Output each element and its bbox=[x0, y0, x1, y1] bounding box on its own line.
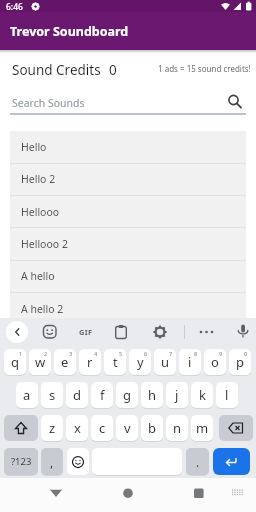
staticText: 0 bbox=[244, 350, 248, 357]
button[interactable]: v bbox=[116, 415, 138, 441]
button[interactable] bbox=[67, 448, 89, 475]
staticText: A hello 2 bbox=[21, 302, 64, 316]
button[interactable]: ?123 bbox=[4, 448, 38, 475]
staticText: d bbox=[73, 386, 81, 404]
button[interactable]: . bbox=[186, 448, 209, 475]
staticText: , bbox=[50, 454, 54, 470]
button[interactable]: , bbox=[41, 448, 63, 475]
button[interactable]: z bbox=[41, 415, 63, 441]
button[interactable]: u bbox=[154, 349, 176, 375]
button[interactable]: g bbox=[116, 382, 138, 408]
staticText: f bbox=[100, 386, 105, 404]
button[interactable]: h bbox=[141, 382, 163, 408]
staticText: 0 bbox=[109, 61, 117, 79]
button[interactable]: k bbox=[191, 382, 213, 408]
button[interactable] bbox=[219, 415, 253, 441]
button[interactable]: l bbox=[216, 382, 238, 408]
button[interactable] bbox=[115, 325, 127, 339]
button[interactable]: n bbox=[166, 415, 188, 441]
staticText: w bbox=[35, 353, 46, 371]
staticText: 6 bbox=[144, 350, 148, 357]
staticText: GIF bbox=[79, 327, 93, 337]
button[interactable] bbox=[153, 325, 167, 339]
button[interactable]: A hello bbox=[10, 260, 246, 292]
button[interactable]: m bbox=[191, 415, 213, 441]
staticText: h bbox=[148, 386, 157, 404]
button[interactable] bbox=[45, 483, 67, 503]
button[interactable]: a bbox=[16, 382, 38, 408]
button[interactable]: Hello 2 bbox=[10, 163, 246, 195]
staticText: a bbox=[23, 386, 31, 404]
button[interactable] bbox=[188, 483, 210, 503]
staticText: A hello bbox=[21, 269, 55, 283]
button[interactable]: j bbox=[166, 382, 188, 408]
button[interactable]: r bbox=[79, 349, 101, 375]
button[interactable]: Hellooo 2 bbox=[10, 228, 246, 260]
staticText: Search Sounds bbox=[12, 96, 85, 110]
staticText: 3 bbox=[69, 350, 73, 357]
staticText: k bbox=[199, 386, 206, 404]
button[interactable] bbox=[6, 321, 28, 343]
button[interactable]: o bbox=[204, 349, 226, 375]
staticText: ?123 bbox=[11, 455, 32, 468]
staticText: m bbox=[196, 419, 209, 437]
staticText: Sound Credits bbox=[12, 61, 101, 79]
button[interactable]: b bbox=[141, 415, 163, 441]
staticText: x bbox=[74, 419, 81, 437]
staticText: p bbox=[236, 353, 244, 371]
button[interactable]: Hellooo bbox=[10, 196, 246, 228]
staticText: r bbox=[87, 353, 93, 371]
staticText: 2 bbox=[44, 350, 48, 357]
button[interactable] bbox=[4, 415, 38, 441]
staticText: b bbox=[148, 419, 156, 437]
staticText: s bbox=[49, 386, 56, 404]
button[interactable]: y bbox=[129, 349, 151, 375]
button[interactable] bbox=[0, 90, 256, 116]
button[interactable]: x bbox=[66, 415, 88, 441]
staticText: l bbox=[225, 386, 229, 404]
button[interactable] bbox=[117, 483, 139, 503]
staticText: g bbox=[123, 386, 131, 404]
button[interactable] bbox=[43, 325, 57, 339]
button[interactable]: p bbox=[229, 349, 251, 375]
staticText: Hello bbox=[21, 140, 47, 154]
staticText: 5 bbox=[119, 350, 123, 357]
staticText: 8 bbox=[194, 350, 198, 357]
button[interactable]: A hello 2 bbox=[10, 293, 246, 325]
staticText: i bbox=[188, 353, 192, 371]
staticText: v bbox=[124, 419, 131, 437]
staticText: e bbox=[61, 353, 69, 371]
button[interactable]: q bbox=[4, 349, 26, 375]
staticText: t bbox=[113, 353, 118, 371]
button[interactable] bbox=[230, 486, 246, 500]
button[interactable]: c bbox=[91, 415, 113, 441]
button[interactable]: i bbox=[179, 349, 201, 375]
button[interactable] bbox=[213, 448, 250, 475]
staticText: 1 bbox=[19, 350, 23, 357]
staticText: 6:46 bbox=[6, 1, 23, 13]
staticText: Hello 2 bbox=[21, 172, 56, 186]
button[interactable]: GIF bbox=[76, 325, 96, 339]
staticText: . bbox=[196, 454, 200, 470]
button[interactable]: t bbox=[104, 349, 126, 375]
button[interactable] bbox=[198, 325, 216, 339]
button[interactable]: s bbox=[41, 382, 63, 408]
button[interactable]: e bbox=[54, 349, 76, 375]
button[interactable]: f bbox=[91, 382, 113, 408]
button[interactable]: Hello bbox=[10, 131, 246, 163]
button[interactable]: w bbox=[29, 349, 51, 375]
staticText: y bbox=[137, 353, 144, 371]
staticText: Trevor Soundboard bbox=[10, 23, 129, 40]
staticText: c bbox=[99, 419, 106, 437]
staticText: 1 ads = 15 sound credits! bbox=[158, 63, 251, 74]
button[interactable]: d bbox=[66, 382, 88, 408]
staticText: 4 bbox=[94, 350, 98, 357]
staticText: j bbox=[175, 386, 179, 404]
staticText: Hellooo 2 bbox=[21, 237, 68, 251]
button[interactable] bbox=[237, 324, 249, 340]
staticText: n bbox=[173, 419, 182, 437]
staticText: u bbox=[161, 353, 170, 371]
staticText: 7 bbox=[169, 350, 173, 357]
staticText: q bbox=[11, 353, 19, 371]
